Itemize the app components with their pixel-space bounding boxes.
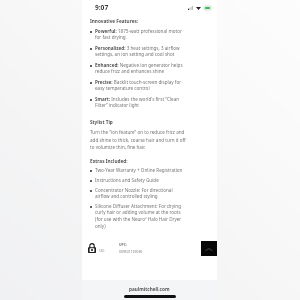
staticText: TAG xyxy=(99,249,105,253)
staticText: Powerful: 1875-watt professional motor f… xyxy=(95,28,186,41)
staticText: paulmitchell.com xyxy=(129,286,170,292)
staticText: Extras Included: xyxy=(90,158,128,164)
staticText: Smart: Includes the world's first “Clean… xyxy=(95,96,186,109)
staticText: Personalized: 3 heat settings, 3 airflow… xyxy=(95,45,186,58)
staticText: UPC: xyxy=(119,242,127,247)
button[interactable]: Scroll to top xyxy=(201,241,217,256)
staticText: 009531129030 xyxy=(119,249,143,254)
staticText: Turn the “ion feature” on to reduce friz… xyxy=(90,129,186,150)
staticText: Innovative Features: xyxy=(90,18,139,24)
staticText: Instructions and Safety Guide xyxy=(95,177,159,183)
staticText: 9:07 xyxy=(95,3,109,12)
staticText: Precise: Backlit touch-screen display fo… xyxy=(95,79,186,92)
staticText: Enhanced: Negative ion generator helps r… xyxy=(95,62,186,75)
staticText: Silicone Diffuser Attachment: For drying… xyxy=(95,203,186,230)
staticText: Stylist Tip xyxy=(90,119,113,125)
staticText: Concentrator Nozzle: For directional air… xyxy=(95,187,186,200)
staticText: Two-Year Warranty + Online Registration xyxy=(95,167,183,173)
